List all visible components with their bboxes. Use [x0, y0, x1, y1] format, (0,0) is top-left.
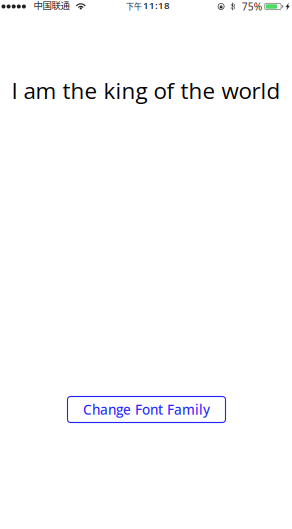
staticText: 中国联通 [33, 0, 69, 12]
staticText: 11:18 [143, 0, 170, 12]
staticText: Change Font Family [83, 400, 210, 419]
button[interactable]: Change Font Family [67, 397, 225, 423]
staticText: I am the king of the world [11, 75, 280, 105]
staticText: 75% [242, 0, 262, 13]
staticText: 下午 [126, 0, 142, 12]
